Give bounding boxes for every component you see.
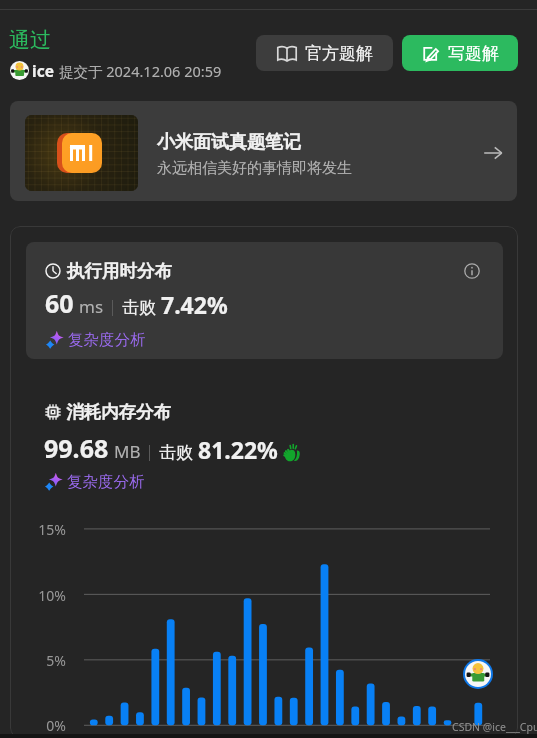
- button[interactable]: 复杂度分析: [45, 472, 145, 492]
- staticText: 复杂度分析: [68, 330, 146, 350]
- staticText: 小米面试真题笔记: [157, 131, 301, 154]
- staticText: 击败: [122, 297, 156, 318]
- other: Open article: [482, 142, 504, 164]
- button[interactable]: 写题解: [402, 35, 518, 71]
- staticText: 99.68: [44, 431, 109, 465]
- staticText: MB: [114, 440, 141, 463]
- staticText: 10%: [26, 586, 66, 605]
- button[interactable]: 官方题解: [256, 35, 393, 71]
- staticText: 7.42%: [161, 289, 228, 320]
- staticText: 消耗内存分布: [66, 401, 171, 423]
- staticText: 5%: [26, 651, 66, 670]
- staticText: CSDN @ice___Cpu: [452, 720, 537, 734]
- staticText: 81.22%: [198, 434, 278, 465]
- staticText: 复杂度分析: [67, 472, 145, 492]
- button[interactable]: 复杂度分析: [46, 330, 146, 350]
- staticText: 提交于 2024.12.06 20:59: [59, 61, 222, 81]
- staticText: 永远相信美好的事情即将发生: [157, 159, 352, 178]
- staticText: 官方题解: [305, 43, 373, 64]
- button[interactable]: 小米面试真题笔记: [10, 101, 517, 201]
- staticText: ice: [32, 60, 54, 81]
- button[interactable]: Info: [464, 263, 480, 279]
- staticText: 15%: [26, 520, 66, 539]
- staticText: ms: [79, 295, 104, 318]
- staticText: 60: [45, 286, 74, 320]
- staticText: 击败: [159, 442, 193, 463]
- staticText: 写题解: [448, 43, 499, 64]
- staticText: 0%: [26, 716, 66, 735]
- staticText: 执行用时分布: [67, 260, 172, 282]
- staticText: 通过: [9, 27, 51, 53]
